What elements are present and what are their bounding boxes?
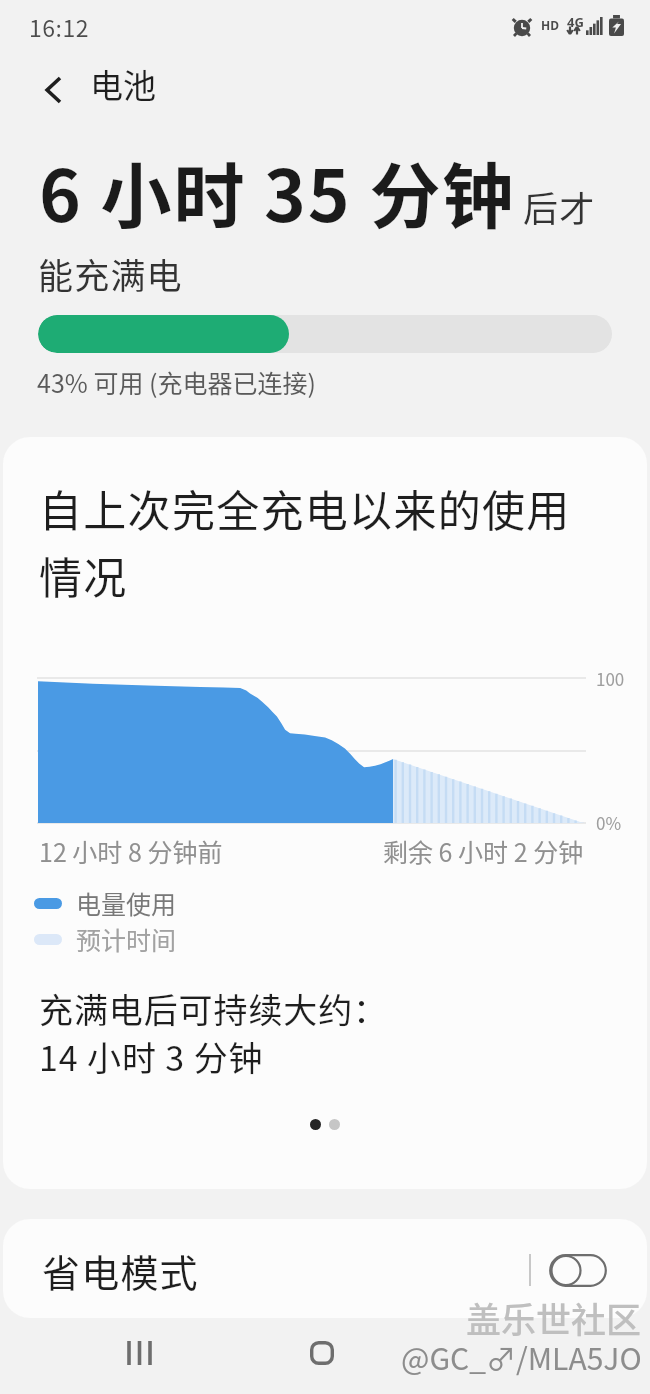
staticText: 自上次完全充电以来的使用 情况 [39,477,571,607]
button[interactable]: 省电模式 [3,1219,647,1318]
staticText: 盖乐世社区 [466,1292,642,1343]
staticText: 预计时间 [76,921,177,957]
staticText: 6 小时 35 分钟 [39,140,516,243]
staticText: 16:12 [29,10,89,43]
button[interactable]: Recents [110,1323,170,1383]
staticText: 充满电后可持续大约： 14 小时 3 分钟 [39,984,388,1080]
staticText: 12 小时 8 分钟前 [39,833,223,869]
button[interactable]: Power saving mode toggle [549,1254,607,1287]
staticText: 0% [596,810,622,835]
button[interactable]: Home [292,1323,352,1383]
staticText: 4G [567,13,584,31]
staticText: 后才 [523,181,596,232]
staticText: 43% 可用 (充电器已连接) [37,364,316,400]
button[interactable]: Back [28,64,80,116]
staticText: 电量使用 [76,885,177,921]
staticText: 剩余 6 小时 2 分钟 [383,833,584,869]
staticText: HD [541,17,559,33]
staticText: 100 [596,666,625,691]
staticText: 电池 [90,60,156,108]
staticText: 能充满电 [38,248,183,299]
staticText: 省电模式 [42,1243,199,1298]
staticText: @GC_♂/MLA5JO [401,1335,642,1378]
